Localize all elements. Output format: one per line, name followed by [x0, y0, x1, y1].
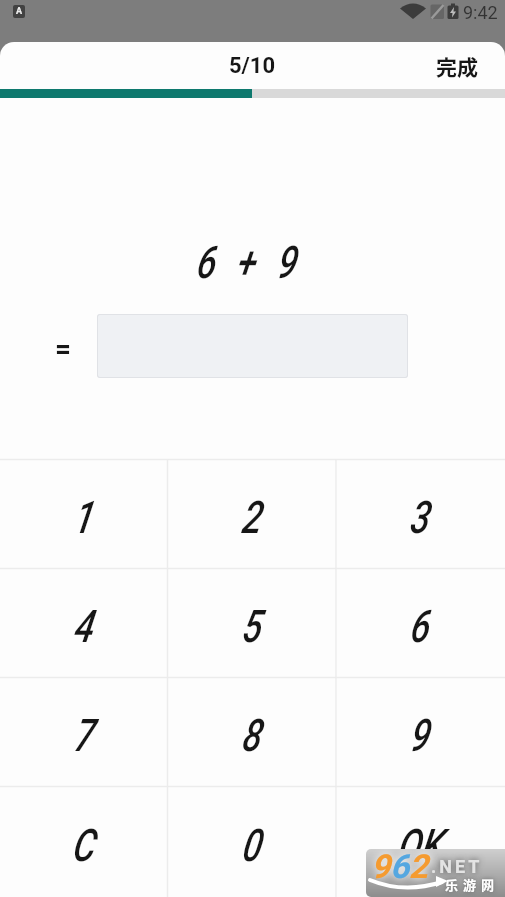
button[interactable]: 8	[168, 677, 337, 786]
staticText: 乐游网	[445, 875, 500, 894]
staticText: 5/10	[229, 53, 276, 79]
button[interactable]: 2	[168, 459, 337, 568]
button[interactable]: 4	[0, 568, 168, 677]
button[interactable]: 5	[168, 568, 337, 677]
staticText: 7	[73, 709, 92, 762]
button[interactable]: 9	[336, 677, 505, 786]
staticText: 完成	[436, 51, 478, 81]
button[interactable]: C	[0, 786, 168, 897]
staticText: 4	[73, 600, 92, 653]
staticText: OK	[396, 819, 442, 872]
staticText: 9	[409, 709, 428, 762]
staticText: 6	[409, 600, 428, 653]
staticText: A	[16, 6, 23, 17]
staticText: =	[55, 332, 72, 365]
button[interactable]: 7	[0, 677, 168, 786]
staticText: C	[71, 819, 94, 872]
staticText: 1	[73, 491, 92, 544]
button[interactable]: 962	[366, 849, 505, 897]
button[interactable]: 1	[0, 459, 168, 568]
staticText: 962	[371, 849, 428, 886]
staticText: 6 + 9	[195, 236, 302, 289]
button[interactable]: 5/10	[229, 53, 276, 79]
button[interactable]: 0	[168, 786, 337, 897]
button[interactable]: 完成	[436, 51, 478, 81]
staticText: 2	[241, 491, 260, 544]
staticText: .NET	[431, 856, 483, 877]
button[interactable]: 6	[336, 568, 505, 677]
staticText: 0	[241, 819, 260, 872]
button[interactable]: OK	[336, 786, 505, 897]
staticText: 3	[409, 491, 428, 544]
staticText: 8	[241, 709, 260, 762]
staticText: 5	[241, 600, 260, 653]
staticText: 9:42	[463, 2, 498, 22]
button[interactable]: 3	[336, 459, 505, 568]
